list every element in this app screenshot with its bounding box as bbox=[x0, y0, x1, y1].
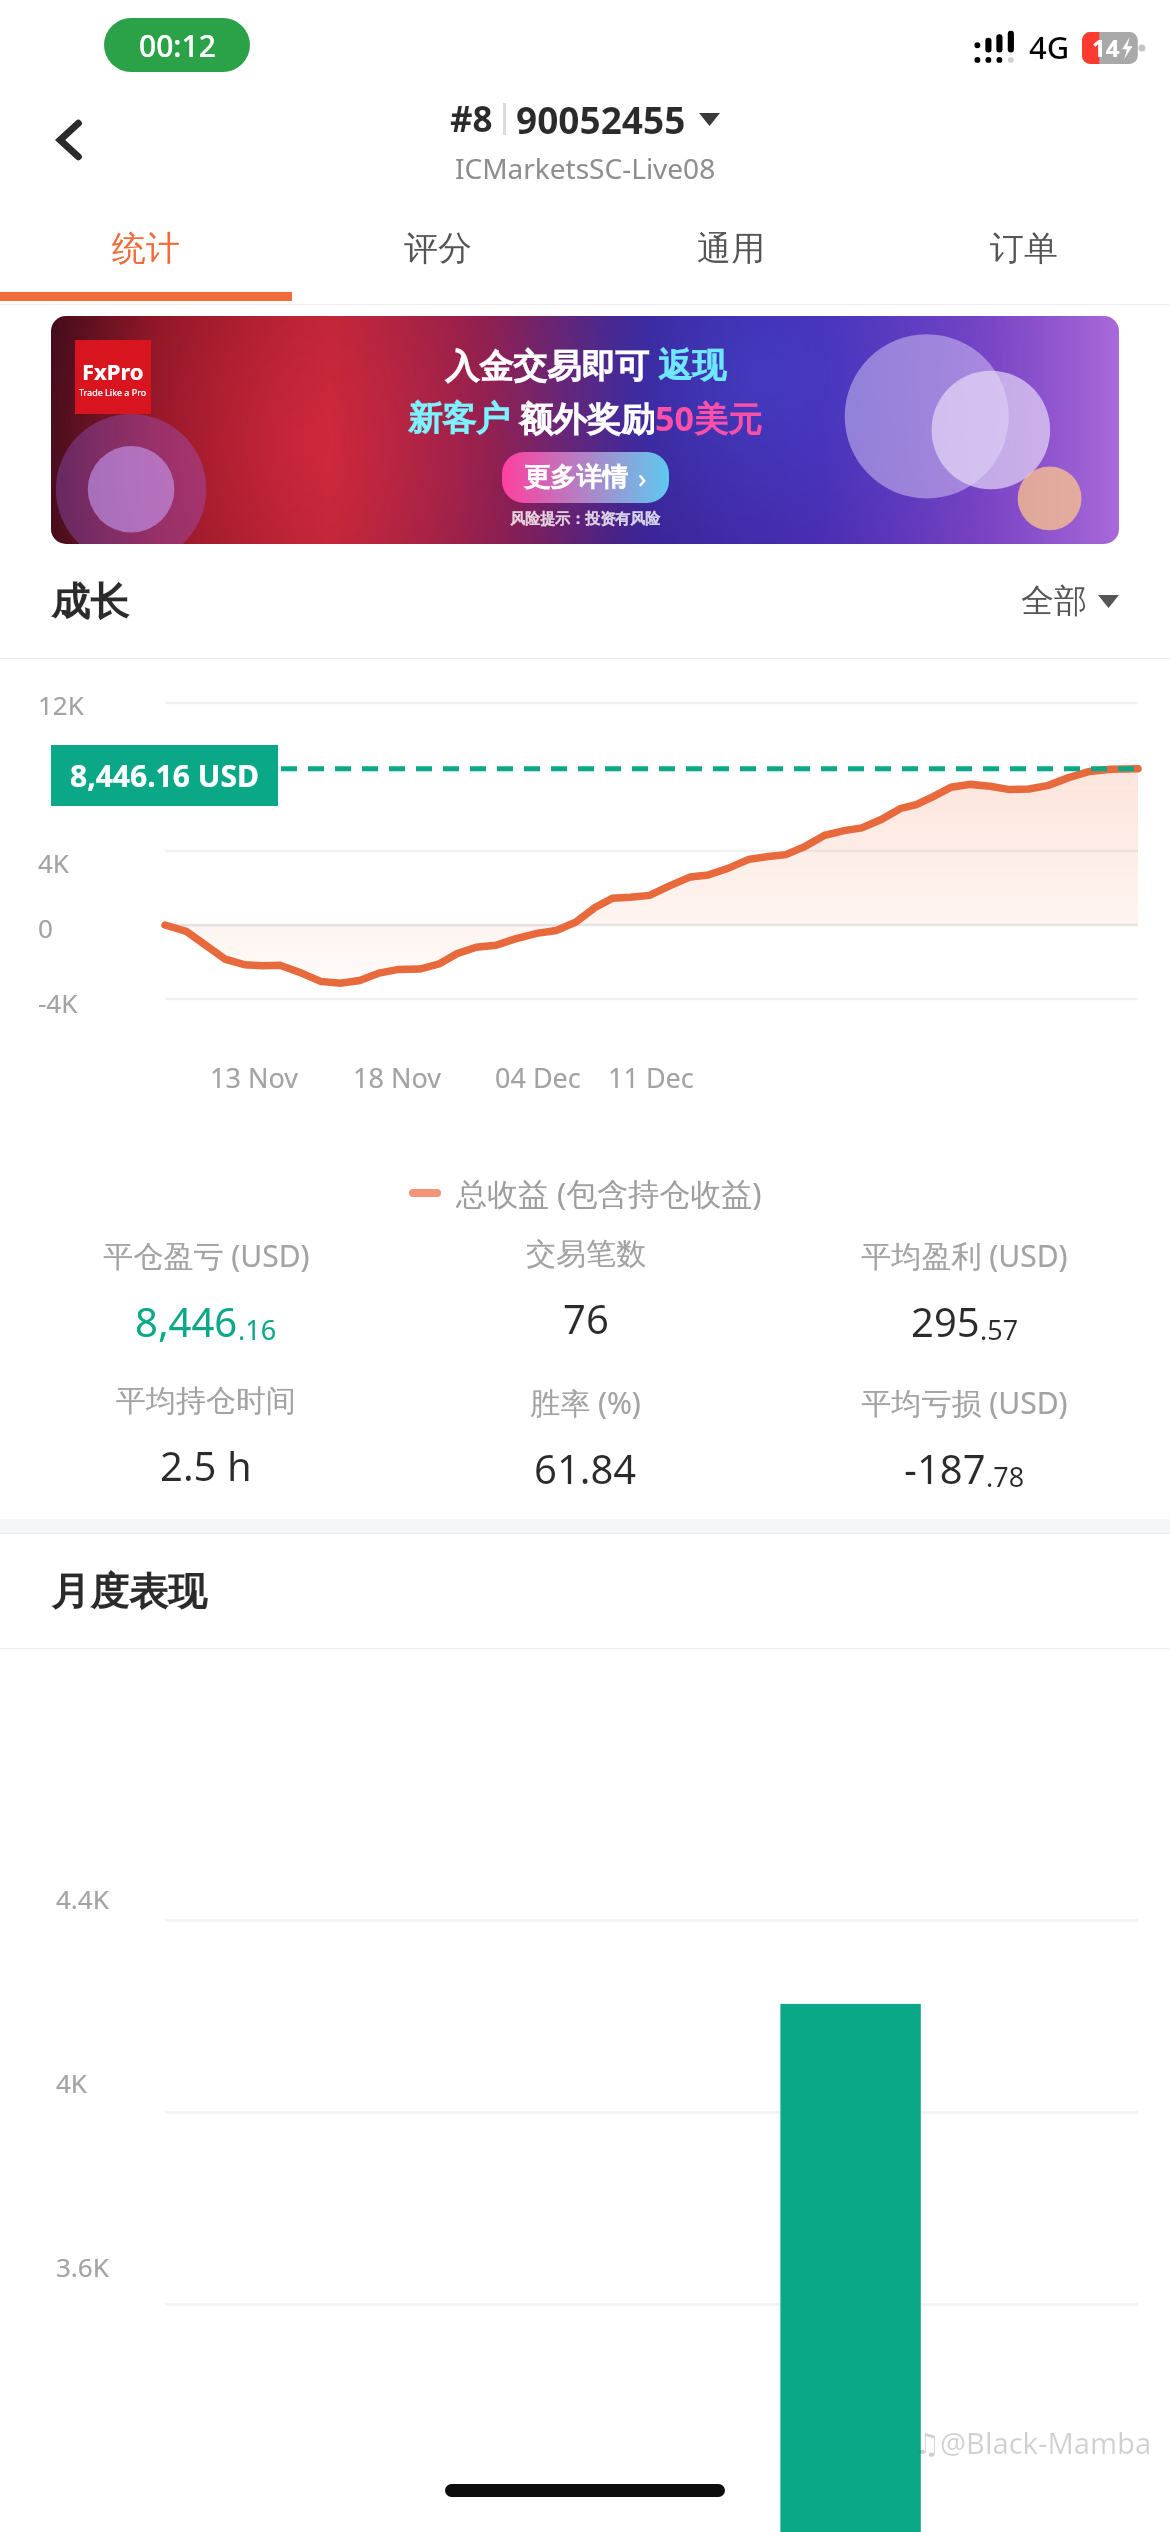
staticText: 平仓盈亏 (USD) bbox=[103, 1235, 310, 1276]
staticText: 评分 bbox=[404, 227, 472, 270]
button[interactable]: Back bbox=[28, 98, 112, 182]
staticText: 新客户 bbox=[408, 397, 510, 440]
button[interactable]: 通用 bbox=[584, 192, 877, 304]
staticText: 0 bbox=[38, 910, 53, 945]
staticText: 04 Dec bbox=[495, 1059, 581, 1096]
staticText: 胜率 (%) bbox=[530, 1382, 641, 1423]
button[interactable]: 平仓盈亏 (USD) bbox=[16, 1235, 396, 1348]
button[interactable]: #8 bbox=[450, 94, 720, 187]
staticText: 8,446.16 USD bbox=[70, 755, 259, 796]
staticText: 76 bbox=[563, 1291, 609, 1345]
staticText: 12K bbox=[38, 687, 84, 722]
staticText: 4K bbox=[38, 845, 69, 880]
button[interactable]: 平均持仓时间 bbox=[16, 1382, 396, 1492]
staticText: 全部 bbox=[1021, 580, 1087, 622]
staticText: 统计 bbox=[112, 227, 180, 270]
staticText: 更多详情 bbox=[524, 461, 628, 494]
staticText: 00:12 bbox=[139, 25, 216, 66]
staticText: 通用 bbox=[697, 227, 765, 270]
staticText: 13 Nov bbox=[210, 1059, 298, 1096]
staticText: 14 bbox=[1092, 31, 1120, 64]
staticText: 4.4K bbox=[56, 1881, 109, 1916]
button[interactable]: 平均亏损 (USD) bbox=[775, 1382, 1154, 1495]
staticText: 4G bbox=[1029, 26, 1070, 68]
button[interactable]: 胜率 (%) bbox=[396, 1382, 775, 1495]
staticText: 平均亏损 (USD) bbox=[861, 1382, 1068, 1423]
staticText: 50美元 bbox=[655, 395, 762, 441]
button[interactable]: 全部 bbox=[1021, 580, 1119, 622]
button[interactable]: FxPro bbox=[51, 316, 1119, 544]
staticText: #8 bbox=[450, 95, 493, 143]
staticText: 风险提示：投资有风险 bbox=[510, 510, 660, 529]
staticText: 平均持仓时间 bbox=[116, 1382, 296, 1420]
staticText: -4K bbox=[38, 985, 78, 1020]
staticText: ♫@Black-Mamba bbox=[914, 2423, 1152, 2462]
staticText: 总收益 (包含持仓收益) bbox=[456, 1172, 762, 1214]
staticText: 成长 bbox=[51, 577, 129, 626]
button[interactable]: 统计 bbox=[0, 192, 292, 304]
staticText: 18 Nov bbox=[353, 1059, 441, 1096]
staticText: 3.6K bbox=[56, 2249, 109, 2284]
staticText: .57 bbox=[980, 1311, 1019, 1348]
staticText: › bbox=[638, 459, 647, 496]
staticText: 入金交易即可 bbox=[445, 342, 658, 388]
staticText: 月度表现 bbox=[51, 1567, 207, 1616]
staticText: .16 bbox=[238, 1311, 277, 1348]
button[interactable]: 评分 bbox=[292, 192, 584, 304]
button[interactable]: 订单 bbox=[877, 192, 1170, 304]
staticText: 4K bbox=[56, 2065, 87, 2100]
button[interactable]: 平均盈利 (USD) bbox=[775, 1235, 1154, 1348]
button[interactable]: 更多详情 bbox=[524, 459, 647, 496]
staticText: 订单 bbox=[990, 227, 1058, 270]
staticText: 11 Dec bbox=[608, 1059, 694, 1096]
staticText: 2.5 h bbox=[160, 1438, 252, 1492]
staticText: 8,446 bbox=[135, 1294, 238, 1348]
staticText: ICMarketsSC-Live08 bbox=[455, 149, 716, 187]
staticText: .78 bbox=[986, 1458, 1025, 1495]
staticText: -187 bbox=[904, 1441, 986, 1495]
staticText: 90052455 bbox=[516, 94, 686, 144]
staticText: Trade Like a Pro bbox=[79, 386, 147, 398]
button[interactable]: 交易笔数 bbox=[396, 1235, 775, 1345]
staticText: 平均盈利 (USD) bbox=[861, 1235, 1068, 1276]
staticText: 295 bbox=[911, 1294, 980, 1348]
staticText: 返现 bbox=[658, 344, 726, 387]
staticText: 交易笔数 bbox=[526, 1235, 646, 1273]
staticText: 61.84 bbox=[534, 1441, 637, 1495]
staticText: 额外奖励 bbox=[510, 395, 655, 441]
staticText: FxPro bbox=[82, 356, 144, 386]
